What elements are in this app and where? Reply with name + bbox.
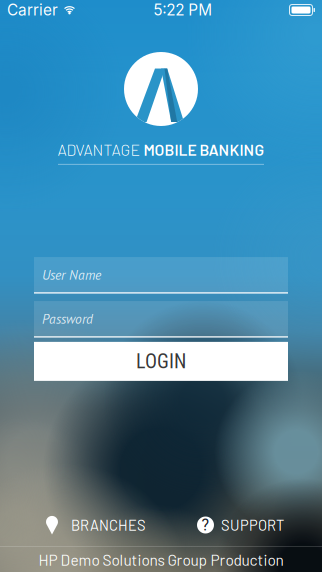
staticText: MOBILE BANKING xyxy=(143,140,264,159)
staticText: ADVANTAGE xyxy=(57,140,143,159)
staticText: Password xyxy=(42,310,93,327)
button[interactable]: BRANCHES xyxy=(44,505,146,545)
staticText: 5:22 PM xyxy=(153,1,212,19)
staticText: ? xyxy=(201,516,209,534)
button[interactable]: User Name xyxy=(34,257,288,294)
button[interactable]: Password xyxy=(34,301,288,338)
staticText: BRANCHES xyxy=(71,516,146,534)
staticText: Carrier xyxy=(7,1,58,19)
staticText: LOGIN xyxy=(136,350,186,373)
button[interactable]: ? xyxy=(197,505,284,545)
staticText: User Name xyxy=(42,266,101,283)
button[interactable]: LOGIN xyxy=(34,342,288,381)
staticText: SUPPORT xyxy=(221,516,284,534)
staticText: HP Demo Solutions Group Production xyxy=(38,550,283,569)
